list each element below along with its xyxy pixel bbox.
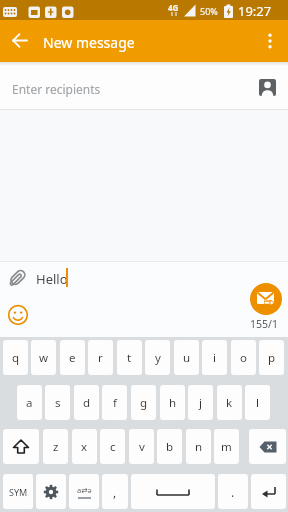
button[interactable]: [249, 429, 286, 464]
button[interactable]: t: [117, 340, 142, 375]
button[interactable]: SYM: [3, 474, 33, 509]
staticText: g: [140, 395, 148, 411]
staticText: d: [83, 395, 91, 411]
staticText: z: [53, 439, 59, 455]
staticText: k: [226, 395, 233, 411]
button[interactable]: c: [100, 429, 125, 464]
button[interactable]: [3, 429, 39, 464]
button[interactable]: [250, 283, 282, 315]
button[interactable]: f: [102, 385, 127, 420]
staticText: r: [98, 350, 103, 366]
staticText: SYM: [9, 486, 28, 498]
button[interactable]: m: [214, 429, 239, 464]
button[interactable]: v: [129, 429, 154, 464]
staticText: a⇄ə: [77, 485, 92, 495]
button[interactable]: j: [188, 385, 213, 420]
button[interactable]: n: [186, 429, 211, 464]
button[interactable]: o: [231, 340, 256, 375]
staticText: 4G: [168, 2, 179, 13]
button[interactable]: [36, 474, 66, 509]
button[interactable]: s: [45, 385, 70, 420]
button[interactable]: a⇄ə: [69, 474, 99, 509]
staticText: f: [113, 395, 117, 411]
staticText: l: [256, 395, 259, 411]
staticText: h: [169, 395, 177, 411]
button[interactable]: k: [217, 385, 242, 420]
button[interactable]: i: [202, 340, 227, 375]
staticText: Enter recipients: [12, 81, 101, 97]
button[interactable]: d: [74, 385, 99, 420]
button[interactable]: e: [60, 340, 85, 375]
staticText: o: [240, 350, 247, 366]
button[interactable]: a: [17, 385, 42, 420]
button[interactable]: y: [145, 340, 170, 375]
button[interactable]: ,: [102, 474, 128, 509]
staticText: ,: [113, 484, 117, 500]
staticText: m: [221, 439, 232, 455]
staticText: t: [127, 350, 132, 366]
staticText: w: [39, 350, 49, 366]
button[interactable]: .: [218, 474, 248, 509]
button[interactable]: w: [31, 340, 56, 375]
staticText: Hello: [36, 270, 68, 288]
button[interactable]: x: [72, 429, 97, 464]
button[interactable]: z: [43, 429, 68, 464]
button[interactable]: l: [245, 385, 270, 420]
staticText: y: [155, 350, 161, 366]
staticText: n: [195, 439, 203, 455]
button[interactable]: Enter recipients: [0, 62, 288, 109]
staticText: u: [183, 350, 191, 366]
button[interactable]: [6, 27, 34, 55]
staticText: c: [110, 439, 116, 455]
staticText: 19:27: [238, 2, 272, 20]
staticText: q: [12, 350, 20, 366]
button[interactable]: [259, 79, 277, 97]
button[interactable]: [256, 27, 284, 55]
staticText: e: [69, 350, 76, 366]
staticText: p: [268, 350, 276, 366]
staticText: .: [231, 484, 235, 500]
button[interactable]: [4, 265, 30, 291]
staticText: v: [139, 439, 145, 455]
button[interactable]: u: [174, 340, 199, 375]
staticText: 155/1: [250, 317, 278, 331]
staticText: j: [199, 395, 202, 411]
button[interactable]: p: [259, 340, 284, 375]
staticText: 50%: [200, 5, 218, 17]
button[interactable]: [7, 304, 29, 326]
button[interactable]: q: [3, 340, 28, 375]
button[interactable]: [251, 474, 286, 509]
staticText: New message: [43, 33, 135, 52]
staticText: b: [166, 439, 174, 455]
button[interactable]: g: [131, 385, 156, 420]
staticText: a: [26, 395, 33, 411]
button[interactable]: b: [157, 429, 182, 464]
button[interactable]: h: [160, 385, 185, 420]
staticText: i: [213, 350, 216, 366]
staticText: x: [81, 439, 88, 455]
button[interactable]: [131, 474, 215, 509]
staticText: s: [55, 395, 61, 411]
button[interactable]: r: [88, 340, 113, 375]
